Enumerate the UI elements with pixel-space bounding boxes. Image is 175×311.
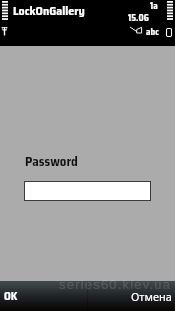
button[interactable]: Отмена (87, 281, 175, 311)
staticText: LockOnGallery (13, 1, 85, 20)
other: Silent mode (130, 27, 142, 33)
staticText: Отмена (131, 289, 172, 304)
other: Keys locked (1, 26, 8, 36)
staticText: series60.kiev.ua (59, 277, 172, 292)
staticText: abc (146, 25, 159, 39)
staticText: OK (4, 288, 18, 305)
staticText: Password (25, 151, 78, 171)
other: Signal strength (2, 1, 8, 21)
staticText: 1a (150, 0, 158, 13)
button[interactable]: OK (0, 281, 87, 311)
other: Battery level (167, 1, 173, 21)
staticText: 15.06 (128, 11, 149, 25)
